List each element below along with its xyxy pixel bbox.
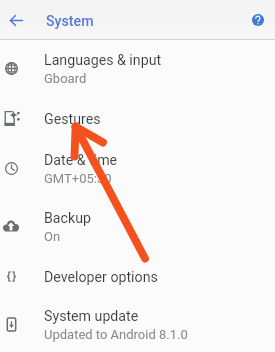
- staticText: Developer options: [44, 269, 158, 286]
- staticText: Backup: [44, 210, 91, 227]
- staticText: System: [46, 13, 94, 30]
- staticText: On: [44, 229, 61, 244]
- button[interactable]: Help: [246, 8, 270, 32]
- staticText: Date & time: [44, 152, 118, 169]
- staticText: Languages & input: [44, 52, 162, 69]
- staticText: Gestures: [44, 111, 101, 128]
- button[interactable]: Backup: [0, 198, 275, 256]
- staticText: GMT+05:30: [44, 171, 112, 186]
- button[interactable]: Date & time: [0, 140, 275, 198]
- button[interactable]: Back: [2, 6, 30, 34]
- button[interactable]: Gestures: [0, 98, 275, 140]
- staticText: Updated to Android 8.1.0: [44, 327, 188, 342]
- staticText: Gboard: [44, 71, 87, 86]
- button[interactable]: System update: [0, 298, 275, 352]
- staticText: System update: [44, 308, 139, 325]
- button[interactable]: Languages & input: [0, 40, 275, 98]
- button[interactable]: Developer options: [0, 256, 275, 298]
